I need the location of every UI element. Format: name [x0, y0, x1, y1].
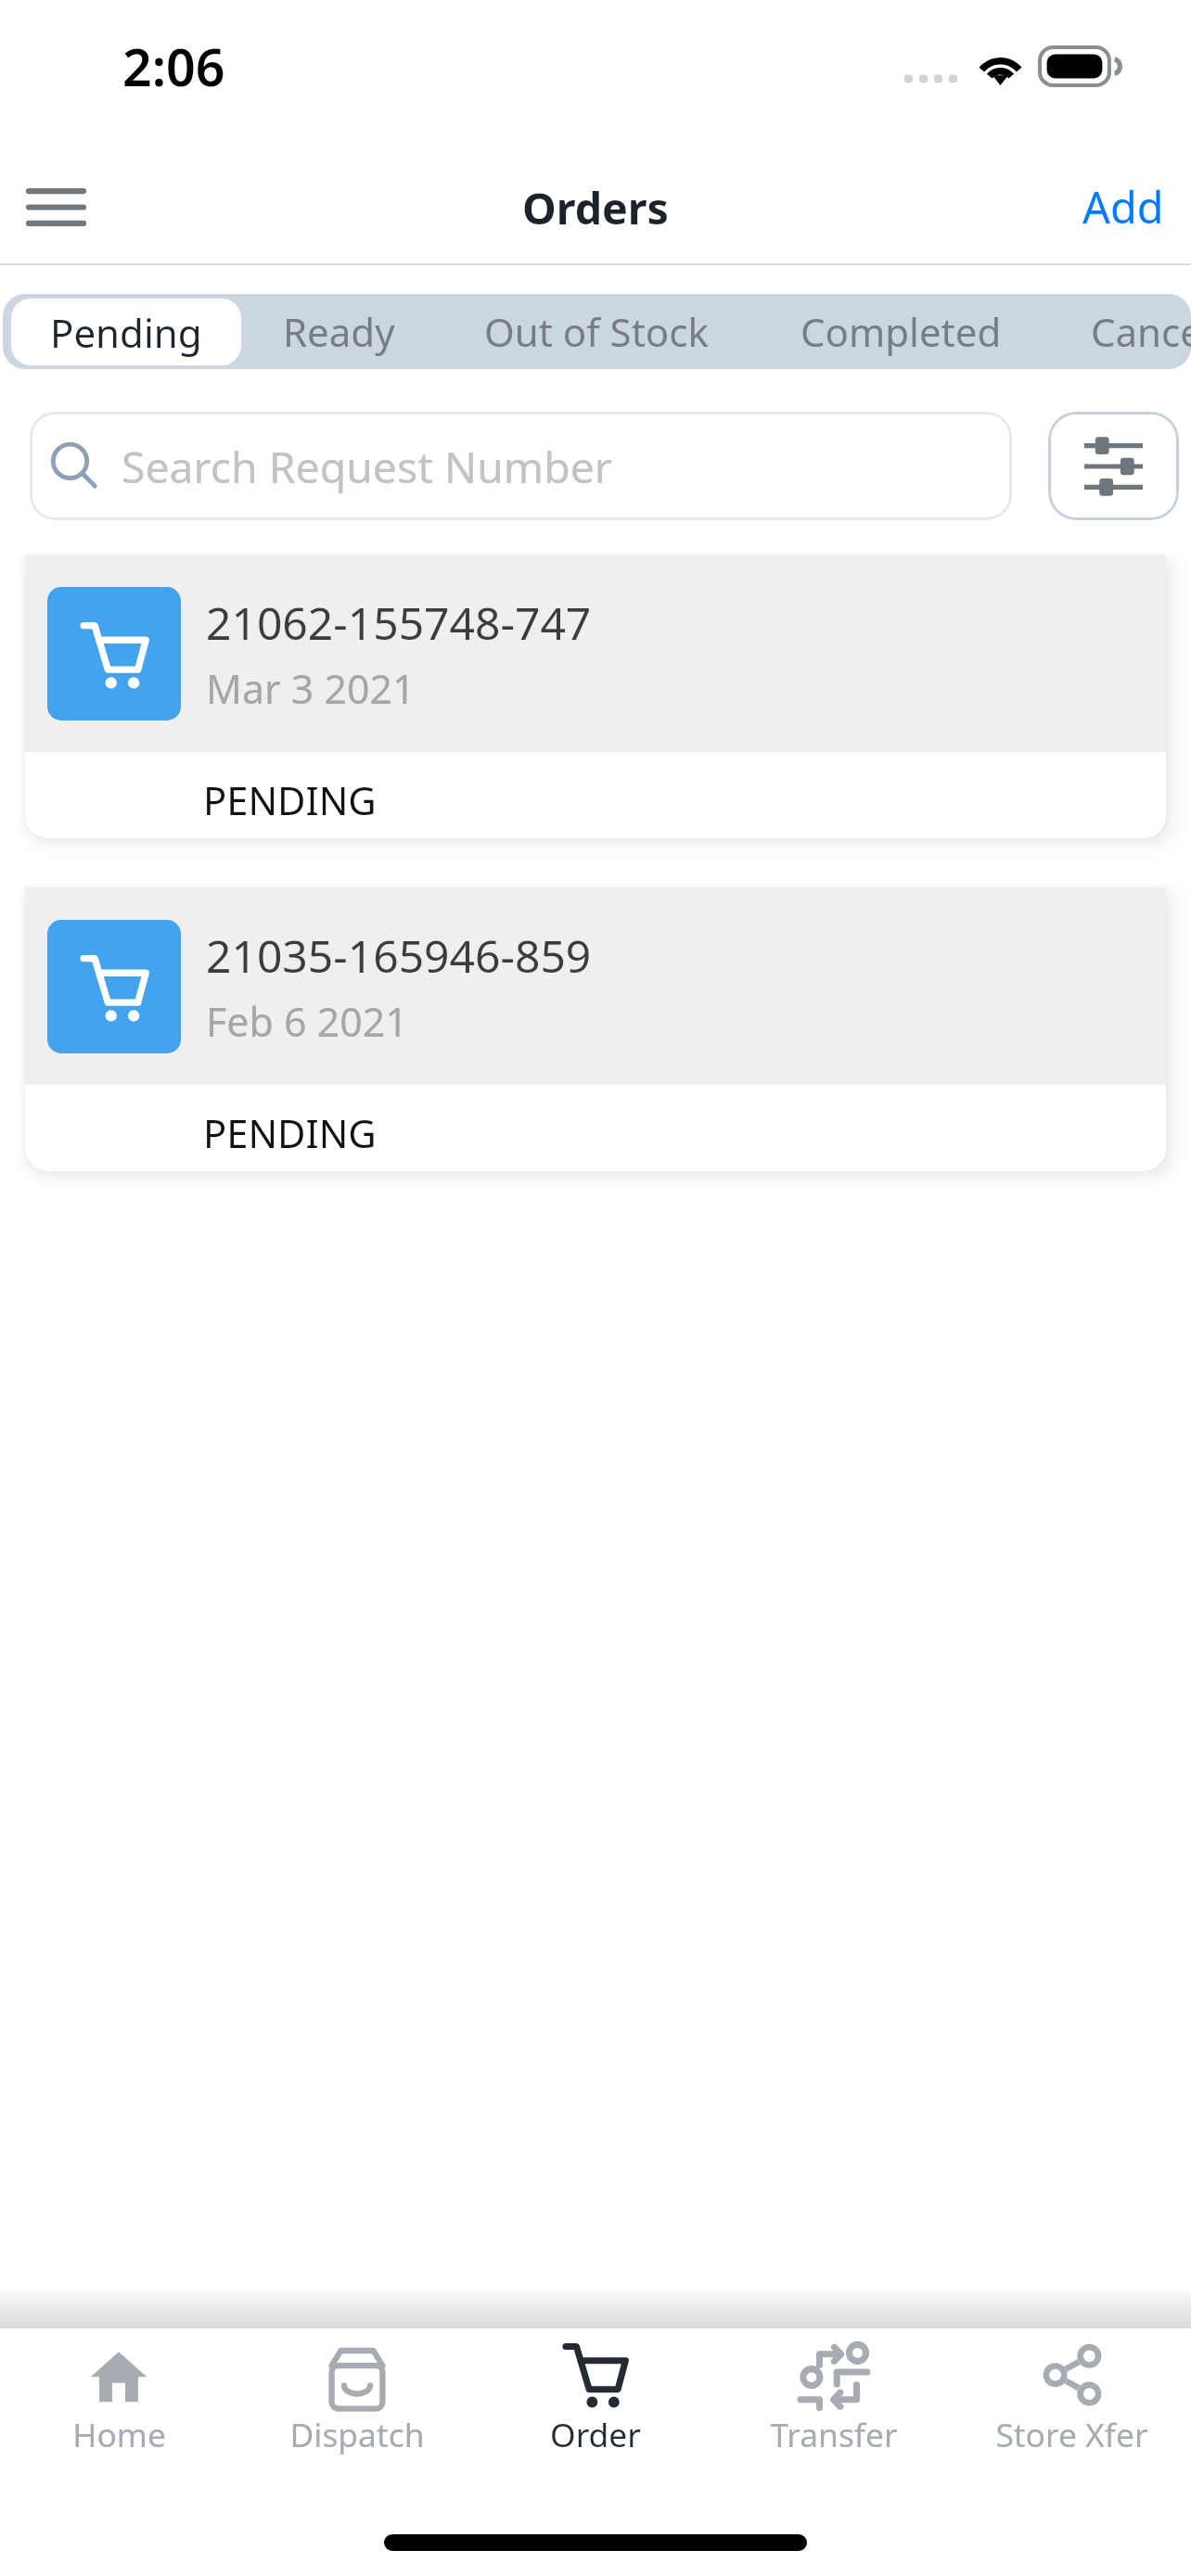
button[interactable]: 21035-165946-859 [25, 887, 1166, 1171]
button[interactable]: 21062-155748-747 [25, 555, 1166, 838]
button[interactable]: Dispatch [237, 2328, 476, 2468]
button[interactable]: Pending [11, 299, 241, 365]
staticText: Add [1082, 177, 1164, 236]
staticText: Mar 3 2021 [206, 661, 416, 715]
button[interactable]: Transfer [714, 2328, 953, 2468]
staticText: Order [550, 2412, 641, 2456]
staticText: PENDING [203, 773, 377, 826]
staticText: Orders [522, 178, 669, 236]
button[interactable]: Menu [0, 145, 111, 269]
staticText: 21062-155748-747 [206, 593, 592, 653]
button[interactable]: Out of Stock [440, 294, 753, 369]
staticText: PENDING [203, 1106, 377, 1159]
staticText: Ready [283, 305, 395, 358]
button[interactable]: Filter [1048, 412, 1179, 520]
staticText: Pending [50, 306, 202, 359]
staticText: Home [72, 2412, 166, 2456]
staticText: Cancelled [1091, 305, 1146, 358]
button[interactable]: Home [0, 2328, 237, 2468]
button[interactable]: Order [476, 2328, 714, 2468]
staticText: 21035-165946-859 [206, 925, 592, 986]
staticText: Completed [800, 305, 1002, 358]
staticText: Transfer [770, 2412, 898, 2456]
button[interactable]: Add [1082, 139, 1191, 263]
button[interactable]: Store Xfer [953, 2328, 1191, 2468]
staticText: Dispatch [289, 2412, 425, 2456]
staticText: Out of Stock [484, 305, 709, 358]
button[interactable]: Cancelled [1046, 294, 1191, 369]
staticText: 2:06 [122, 32, 225, 102]
staticText: Feb 6 2021 [206, 994, 408, 1048]
button[interactable]: Completed [753, 294, 1046, 369]
staticText: Store Xfer [995, 2412, 1148, 2456]
staticText: Search Request Number [122, 437, 612, 495]
button[interactable]: Search Request Number [30, 412, 1012, 520]
button[interactable]: Ready [241, 294, 440, 369]
